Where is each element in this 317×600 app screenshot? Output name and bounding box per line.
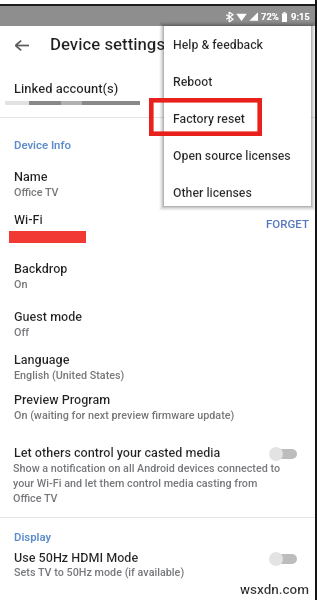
staticText: Language [14,352,70,367]
button[interactable]: Backdrop [14,261,262,293]
button[interactable]: Name [14,169,262,201]
staticText: On (waiting for next preview firmware up… [14,409,235,422]
button[interactable]: Other licenses [164,174,311,211]
staticText: Reboot [173,75,213,89]
staticText: Device settings [50,34,166,54]
staticText: Backdrop [14,261,68,276]
staticText: wsxdn.com [240,581,309,597]
staticText: OfficeNet 5G [14,229,76,242]
staticText: English (United States) [14,369,125,382]
staticText: 9:15 [291,11,310,22]
staticText: Guest mode [14,309,83,324]
staticText: Use 50Hz HDMI Mode [14,550,139,565]
staticText: Let others control your casted media [14,445,221,460]
staticText: 72% [261,11,279,22]
staticText: Preview Program [14,392,111,407]
staticText: On [14,278,28,291]
staticText: Factory reset [173,112,245,126]
staticText: Open source licenses [173,149,291,163]
staticText: Device Info [14,138,71,151]
button[interactable]: Back [8,31,36,59]
staticText: Linked account(s) [14,81,119,96]
staticText: Show a notification on all Android devic… [13,462,285,504]
button[interactable]: Wi-Fi [14,212,262,244]
staticText: Off [14,326,30,339]
staticText: Help & feedback [173,38,264,52]
button[interactable]: Preview Program [14,392,262,424]
staticText: Wi-Fi [14,212,43,227]
staticText: Name [14,169,48,184]
staticText: Other licenses [173,186,252,200]
button[interactable]: Factory reset [164,100,311,137]
button[interactable]: Toggle setting [268,550,302,568]
button[interactable]: Reboot [164,63,311,100]
button[interactable]: Use 50Hz HDMI Mode [0,548,317,584]
button[interactable]: Toggle setting [268,445,302,463]
button[interactable]: Guest mode [14,309,262,341]
staticText: Display [14,530,52,543]
button[interactable]: Open source licenses [164,137,311,174]
staticText: Office TV [14,186,59,199]
button[interactable]: Language [14,352,262,384]
staticText: Sets TV to 50Hz mode (if available) [14,566,185,579]
button[interactable]: Let others control your casted media [0,443,317,503]
button[interactable]: FORGET [266,217,309,230]
button[interactable]: Help & feedback [164,26,311,63]
